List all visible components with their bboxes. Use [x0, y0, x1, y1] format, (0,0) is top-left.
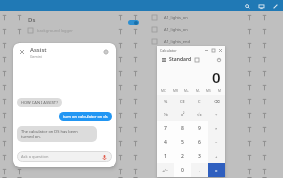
staticText: M: [218, 89, 221, 93]
button[interactable]: 8: [174, 121, 191, 135]
button[interactable]: 6: [191, 135, 208, 149]
staticText: Gemini: [30, 54, 42, 59]
staticText: 5: [181, 139, 184, 146]
staticText: ÷: [215, 112, 218, 117]
staticText: background logger: [37, 28, 73, 33]
button[interactable]: A1_lights_on: [152, 23, 280, 35]
staticText: 0: [212, 67, 221, 87]
button[interactable]: =: [208, 163, 225, 177]
button[interactable]: 5: [174, 135, 191, 149]
staticText: −: [215, 140, 218, 145]
staticText: CE: [180, 99, 185, 104]
button[interactable]: +: [208, 149, 225, 163]
staticText: 9: [198, 125, 201, 132]
button[interactable]: Minimize: [203, 47, 210, 54]
staticText: %: [164, 99, 168, 104]
button[interactable]: C: [191, 95, 208, 108]
staticText: A1_lights_on: [164, 15, 188, 20]
button[interactable]: Close: [18, 48, 26, 56]
button[interactable]: A1_lights_end: [152, 35, 280, 47]
button[interactable]: +/−: [157, 163, 174, 177]
button[interactable]: MS: [203, 87, 214, 95]
staticText: 2: [181, 153, 184, 160]
staticText: ⅟x: [164, 112, 168, 117]
staticText: ×: [215, 126, 218, 131]
button[interactable]: CE: [174, 95, 191, 108]
staticText: A1_lights_on: [164, 27, 188, 32]
staticText: Calculator: [160, 48, 177, 53]
staticText: .: [199, 168, 201, 173]
button[interactable]: 2: [174, 149, 191, 163]
button[interactable]: MR: [169, 87, 181, 95]
staticText: MC: [161, 89, 166, 93]
button[interactable]: Search: [243, 2, 251, 10]
button[interactable]: A1_lights_on: [152, 11, 280, 23]
button[interactable]: Settings: [101, 47, 111, 57]
staticText: HOW CAN I ASSIST?: [21, 100, 58, 105]
staticText: 0: [181, 167, 184, 174]
staticText: +/−: [162, 168, 169, 173]
button[interactable]: x²: [174, 108, 191, 121]
staticText: 4: [164, 139, 167, 146]
staticText: Ask a question: [21, 154, 49, 159]
button[interactable]: M+: [181, 87, 192, 95]
button[interactable]: MC: [157, 87, 169, 95]
staticText: +: [215, 154, 218, 159]
button[interactable]: Display: [257, 2, 265, 10]
button[interactable]: History: [215, 56, 222, 63]
staticText: Assist: [30, 46, 47, 54]
button[interactable]: Edit: [271, 2, 279, 10]
staticText: 3: [198, 153, 201, 160]
staticText: A1_lights_end: [164, 39, 190, 44]
staticText: ⌫: [214, 99, 220, 104]
button[interactable]: −: [208, 135, 225, 149]
button[interactable]: M: [214, 87, 225, 95]
button[interactable]: ÷: [208, 108, 225, 121]
button[interactable]: 7: [157, 121, 174, 135]
staticText: x²: [181, 112, 185, 117]
button[interactable]: ⌫: [208, 95, 225, 108]
staticText: Ds: [28, 16, 36, 24]
button[interactable]: 4: [157, 135, 174, 149]
button[interactable]: Toggle: [128, 20, 139, 25]
staticText: 8: [181, 125, 184, 132]
staticText: C: [198, 99, 201, 104]
staticText: √x: [197, 112, 202, 117]
staticText: MS: [206, 89, 211, 93]
staticText: The calculator on DS has been turned on.: [21, 129, 78, 139]
staticText: turn on calculator on ds: [63, 114, 108, 119]
button[interactable]: Voice input: [100, 153, 108, 161]
button[interactable]: Maximize: [210, 47, 217, 54]
button[interactable]: √x: [191, 108, 208, 121]
staticText: 6: [198, 139, 201, 146]
button[interactable]: ×: [208, 121, 225, 135]
button[interactable]: Menu: [160, 56, 167, 63]
button[interactable]: 3: [191, 149, 208, 163]
staticText: 7: [164, 125, 167, 132]
button[interactable]: Close: [217, 47, 224, 54]
staticText: MR: [173, 89, 178, 93]
button[interactable]: Ask a question: [17, 151, 112, 162]
button[interactable]: 9: [191, 121, 208, 135]
staticText: 1: [164, 153, 167, 160]
button[interactable]: ⅟x: [157, 108, 174, 121]
staticText: Standard: [169, 56, 192, 63]
staticText: =: [215, 168, 218, 173]
button[interactable]: %: [157, 95, 174, 108]
button[interactable]: 1: [157, 149, 174, 163]
staticText: M+: [184, 89, 189, 93]
button[interactable]: 0: [174, 163, 191, 177]
button[interactable]: M-: [192, 87, 203, 95]
staticText: M-: [196, 89, 200, 93]
